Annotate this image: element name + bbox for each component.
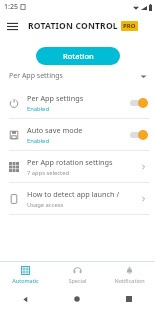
staticText: 7 apps selected	[27, 169, 70, 177]
button[interactable]: Home	[51, 288, 103, 310]
staticText: PRO	[123, 22, 136, 30]
staticText: Special	[68, 277, 87, 284]
button[interactable]: Back	[0, 288, 51, 310]
staticText: Auto save mode	[27, 125, 83, 135]
staticText: Rotation	[63, 51, 94, 61]
other: Open	[139, 194, 149, 204]
staticText: Per App settings	[9, 71, 63, 81]
button[interactable]: Automatic	[0, 262, 51, 288]
other: Open	[139, 162, 149, 172]
button[interactable]: Notification	[103, 262, 155, 288]
staticText: Per App rotation settings	[27, 157, 113, 167]
staticText: Notification	[114, 277, 145, 284]
staticText: Automatic	[12, 277, 39, 284]
staticText: Usage access	[27, 201, 64, 209]
staticText: ROTATION CONTROL	[28, 20, 118, 32]
staticText: Per App settings	[27, 93, 84, 103]
button[interactable]: Special	[51, 262, 103, 288]
button[interactable]: Recent apps	[103, 288, 155, 310]
button[interactable]: Per App settings	[0, 87, 155, 118]
staticText: 1:25	[4, 2, 18, 12]
button[interactable]: Per App settings	[9, 65, 147, 87]
staticText: Enabled	[27, 137, 49, 145]
button[interactable]: Open navigation menu	[0, 14, 24, 38]
button[interactable]: Auto save mode	[0, 119, 155, 150]
button[interactable]: How to detect app launch / close	[0, 183, 155, 214]
button[interactable]: Rotation	[36, 47, 120, 65]
staticText: Enabled	[27, 105, 49, 113]
button[interactable]: Toggle	[129, 129, 149, 141]
button[interactable]: Toggle	[129, 97, 149, 109]
button[interactable]: Per App rotation settings	[0, 151, 155, 182]
staticText: How to detect app launch / close	[27, 189, 135, 199]
